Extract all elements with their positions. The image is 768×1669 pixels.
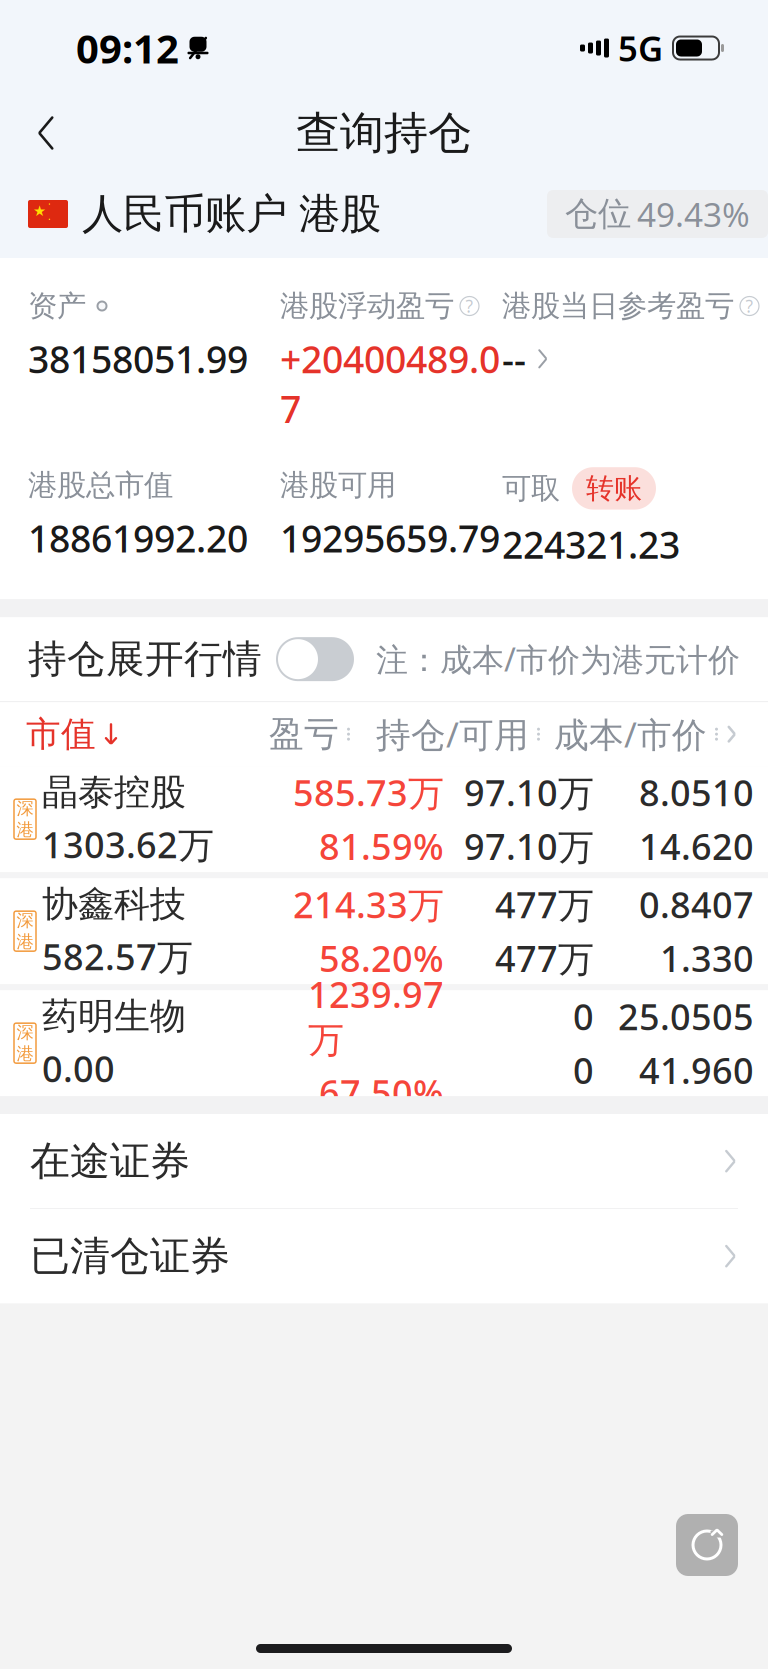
staticText: ? — [465, 294, 473, 317]
button[interactable]: 已清仓证券 — [0, 1209, 768, 1303]
button[interactable]: 持仓/可用 — [376, 711, 540, 757]
staticText: · — [48, 196, 51, 210]
staticText: 224321.23 — [502, 520, 680, 569]
staticText: 深 — [16, 910, 33, 931]
staticText: 41.960 — [639, 1046, 754, 1094]
staticText: 药明生物 — [42, 994, 186, 1038]
button[interactable]: 转账 — [572, 467, 656, 510]
staticText: 49.43% — [637, 192, 750, 236]
staticText: -- — [502, 334, 526, 384]
staticText: 注：成本/市价为港元计价 — [376, 638, 740, 680]
staticText: 5G — [618, 25, 663, 71]
staticText: 8.0510 — [639, 768, 754, 816]
staticText: 1.330 — [660, 934, 754, 982]
button[interactable]: 持仓展开行情 — [272, 633, 358, 685]
staticText: 在途证券 — [30, 1137, 190, 1186]
staticText: 97.10万 — [464, 822, 594, 870]
staticText: 资产 — [28, 288, 86, 324]
staticText: 81.59% — [319, 822, 444, 870]
staticText: 人民币账户 港股 — [82, 189, 381, 239]
staticText: +20400489.07 — [280, 334, 500, 433]
button[interactable]: 深 — [0, 878, 768, 984]
staticText: 持仓展开行情 — [28, 635, 262, 683]
staticText: 14.620 — [639, 822, 754, 870]
staticText: ? — [745, 294, 753, 317]
staticText: 97.10万 — [464, 768, 594, 816]
staticText: 仓位 — [565, 193, 631, 234]
staticText: 19295659.79 — [280, 513, 500, 563]
staticText: 18861992.20 — [28, 513, 248, 563]
staticText: · — [48, 211, 51, 226]
button[interactable]: 返回 — [14, 101, 78, 165]
staticText: 585.73万 — [293, 768, 444, 816]
staticText: 0 — [573, 1046, 594, 1094]
staticText: 09:12 — [76, 21, 179, 74]
staticText: 港股当日参考盈亏 — [502, 288, 734, 324]
staticText: 58.20% — [319, 934, 444, 982]
staticText: 港股浮动盈亏 — [280, 288, 454, 324]
staticText: 港 — [16, 931, 33, 952]
staticText: 477万 — [495, 934, 594, 982]
staticText: 477万 — [495, 880, 594, 928]
staticText: 1239.97万 — [308, 970, 444, 1062]
staticText: 深 — [16, 1022, 33, 1043]
button[interactable]: 刷新 — [676, 1514, 738, 1576]
staticText: 深 — [16, 798, 33, 819]
staticText: 协鑫科技 — [42, 882, 186, 926]
staticText: 盈亏 — [269, 713, 339, 755]
staticText: 持仓/可用 — [376, 711, 529, 757]
staticText: 67.50% — [319, 1068, 444, 1116]
staticText: 582.57万 — [42, 932, 193, 980]
staticText: 0.8407 — [639, 880, 754, 928]
staticText: 25.0505 — [618, 992, 754, 1040]
button[interactable]: 盈亏 — [269, 713, 350, 755]
staticText: 成本/市价 — [554, 711, 707, 757]
staticText: 转账 — [586, 471, 642, 506]
staticText: 查询持仓 — [296, 106, 472, 160]
button[interactable]: 在途证券 — [0, 1114, 768, 1208]
button[interactable]: 成本/市价 — [554, 711, 718, 757]
staticText: 38158051.99 — [28, 334, 248, 384]
staticText: 214.33万 — [293, 880, 444, 928]
staticText: 港 — [16, 1043, 33, 1064]
staticText: 市值 — [26, 713, 96, 755]
staticText: 1303.62万 — [42, 820, 214, 868]
staticText: 0 — [573, 992, 594, 1040]
staticText: 晶泰控股 — [42, 770, 186, 814]
staticText: 可取 — [502, 470, 560, 506]
staticText: 港股可用 — [280, 467, 396, 503]
staticText: 港 — [16, 819, 33, 840]
button[interactable]: 深 — [0, 766, 768, 872]
button[interactable]: 深 — [0, 990, 768, 1096]
staticText: ★ — [33, 203, 46, 219]
staticText: 0.00 — [42, 1044, 115, 1092]
staticText: 已清仓证券 — [30, 1232, 230, 1281]
button[interactable]: 市值 — [26, 713, 118, 755]
staticText: 港股总市值 — [28, 467, 173, 503]
